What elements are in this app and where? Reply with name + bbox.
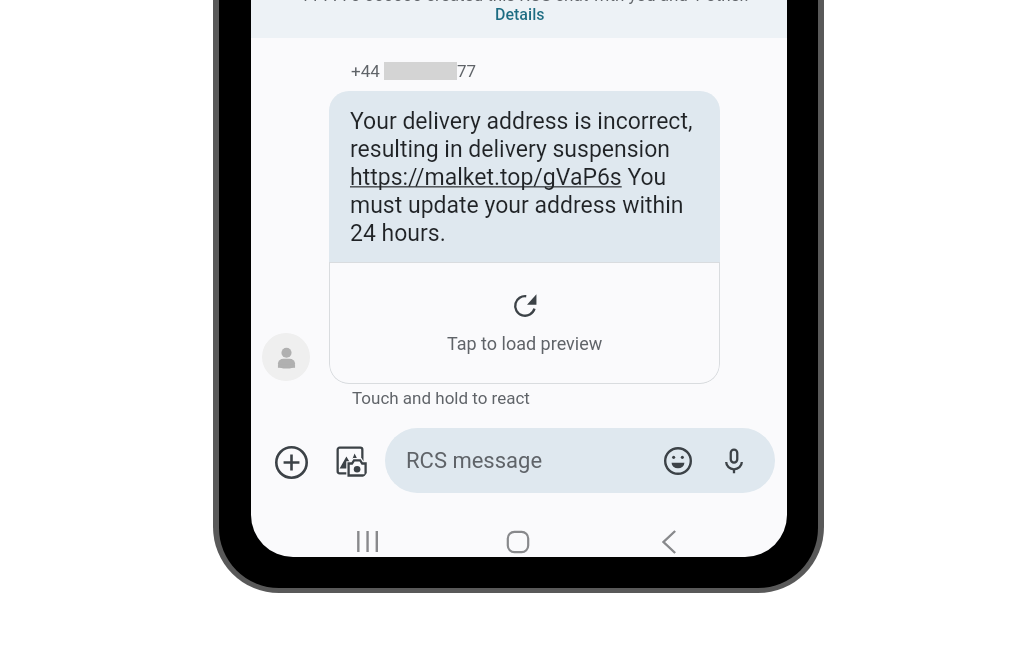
staticText: RCS message — [406, 448, 543, 474]
button[interactable]: Add attachment — [271, 442, 311, 482]
staticText: +44 — [351, 61, 384, 81]
staticText: Your delivery address is incorrect, resu… — [350, 108, 696, 247]
button[interactable]: Tap to load preview — [329, 262, 720, 384]
button[interactable]: Emoji — [660, 443, 696, 479]
staticText: Tap to load preview — [447, 333, 603, 354]
button[interactable]: Back — [649, 522, 689, 557]
button[interactable]: Your delivery address is incorrect, resu… — [329, 91, 720, 262]
button[interactable]: Voice message — [716, 443, 752, 479]
staticText: Details — [495, 5, 545, 24]
button[interactable]: Recent apps — [348, 522, 388, 557]
staticText: 77 — [457, 61, 477, 81]
button[interactable]: Gallery — [331, 441, 371, 481]
staticText: Touch and hold to react — [352, 388, 530, 408]
button[interactable]: RCS message — [385, 428, 775, 493]
button[interactable]: Home — [498, 522, 538, 557]
button[interactable]: Details — [485, 2, 555, 27]
staticText: +44 7770 000000 created this RCS chat wi… — [251, 0, 787, 5]
